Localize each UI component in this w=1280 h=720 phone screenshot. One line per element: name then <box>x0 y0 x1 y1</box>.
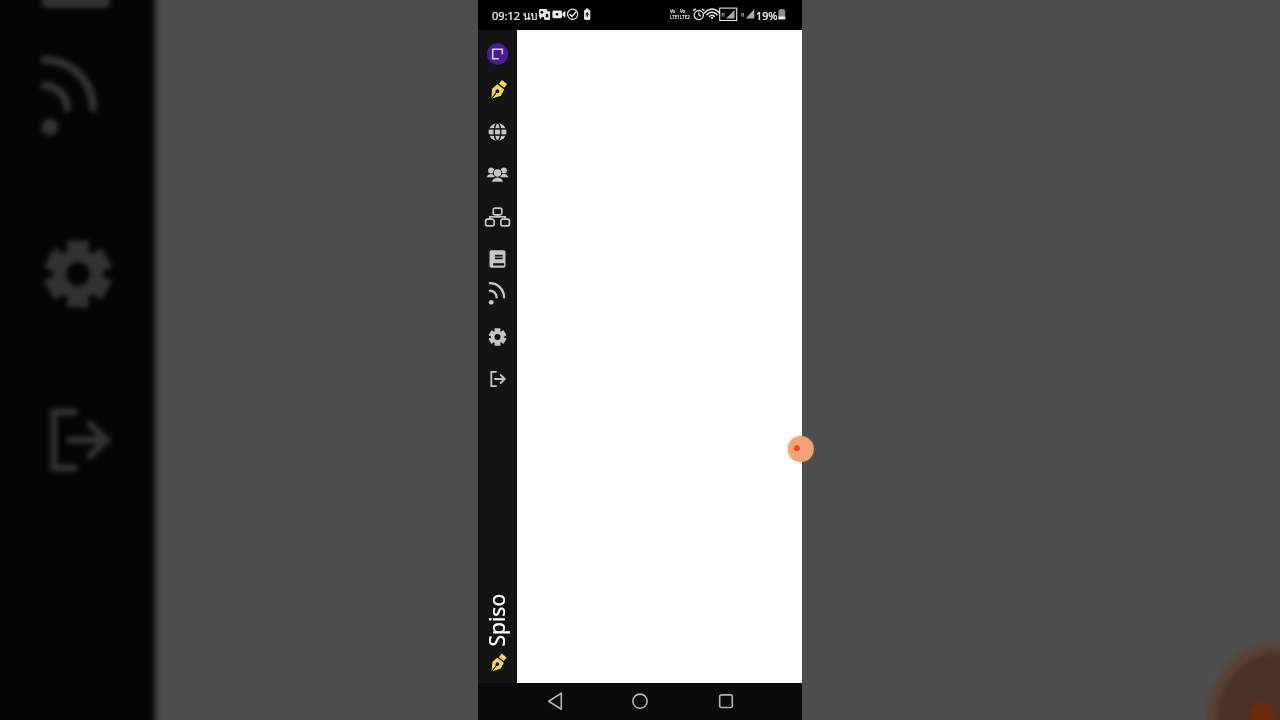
button[interactable]: Sign out <box>478 360 517 398</box>
button[interactable]: Settings <box>478 318 517 356</box>
staticText: LTE2 <box>680 14 690 20</box>
staticText: Vo <box>680 8 686 14</box>
button[interactable]: Spiso home <box>478 35 517 73</box>
staticText: LTE1 <box>670 14 680 20</box>
staticText: 19% <box>756 8 778 23</box>
button[interactable]: Feed <box>478 277 517 315</box>
button[interactable]: Library <box>478 240 517 278</box>
staticText: Vo <box>670 8 676 14</box>
button[interactable]: Workspaces <box>478 198 517 236</box>
staticText: 09:12 นบ <box>492 7 538 24</box>
button[interactable]: New note <box>478 72 517 110</box>
button[interactable] <box>478 586 517 712</box>
button[interactable]: Community <box>478 156 517 194</box>
button[interactable]: Web <box>478 113 517 151</box>
